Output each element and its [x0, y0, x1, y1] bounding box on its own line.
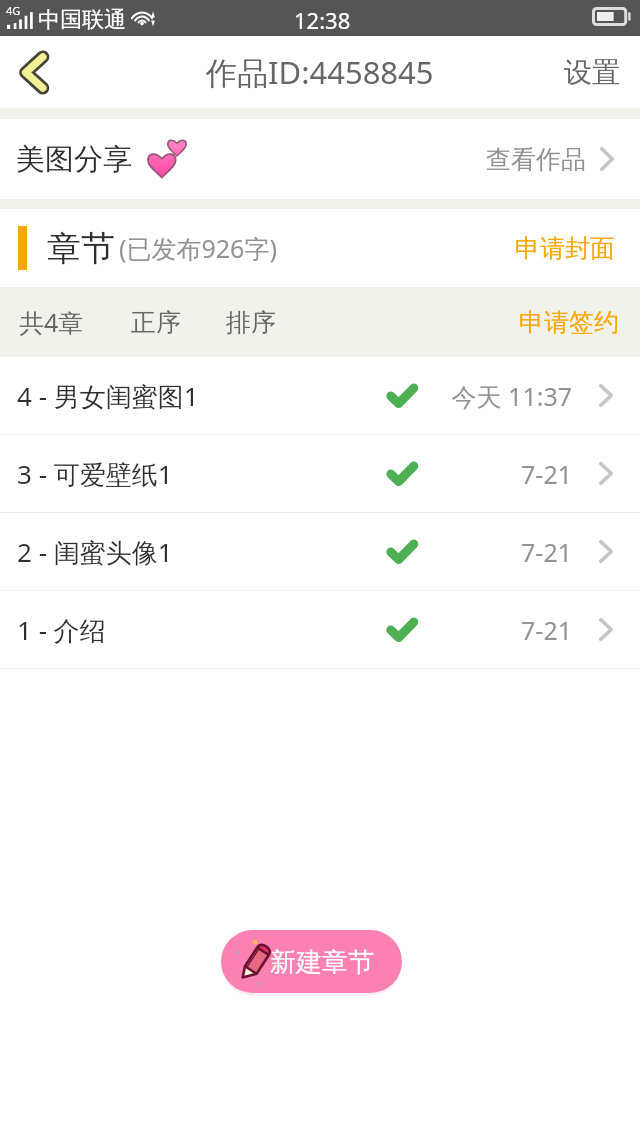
- staticText: 申请签约: [519, 307, 619, 338]
- staticText: 新建章节: [270, 946, 374, 979]
- staticText: 7-21: [521, 613, 572, 647]
- staticText: 共4章: [19, 305, 84, 339]
- staticText: 7-21: [521, 535, 572, 569]
- staticText: 2 - 闺蜜头像1: [17, 534, 173, 570]
- staticText: 3 - 可爱壁纸1: [17, 456, 173, 492]
- staticText: 4 - 男女闺蜜图1: [17, 378, 199, 414]
- staticText: 申请封面: [515, 233, 615, 264]
- staticText: 设置: [564, 55, 620, 90]
- staticText: 章节: [47, 227, 115, 270]
- button[interactable]: 共4章: [13, 295, 90, 349]
- staticText: 7-21: [521, 457, 572, 491]
- button[interactable]: 申请封面: [515, 223, 615, 274]
- staticText: 12:38: [294, 5, 351, 35]
- staticText: 1 - 介绍: [17, 612, 106, 648]
- button[interactable]: 3 - 可爱壁纸1: [0, 435, 640, 512]
- button[interactable]: 1 - 介绍: [0, 591, 640, 668]
- button[interactable]: Back: [0, 36, 74, 108]
- staticText: 作品ID:4458845: [206, 51, 434, 93]
- button[interactable]: 新建章节: [221, 930, 402, 993]
- button[interactable]: 4 - 男女闺蜜图1: [0, 357, 640, 434]
- button[interactable]: 正序: [125, 297, 187, 348]
- staticText: 排序: [226, 307, 276, 338]
- button[interactable]: 设置: [544, 37, 640, 108]
- button[interactable]: 2 - 闺蜜头像1: [0, 513, 640, 590]
- staticText: 中国联通: [38, 6, 126, 34]
- staticText: 正序: [131, 307, 181, 338]
- staticText: 查看作品: [486, 144, 586, 175]
- button[interactable]: 申请签约: [519, 297, 619, 348]
- staticText: (已发布926字): [119, 231, 277, 265]
- button[interactable]: 美图分享: [0, 119, 640, 199]
- staticText: 今天 11:37: [451, 379, 572, 413]
- staticText: 4G: [6, 3, 21, 18]
- button[interactable]: 排序: [220, 297, 282, 348]
- staticText: 美图分享: [16, 141, 132, 178]
